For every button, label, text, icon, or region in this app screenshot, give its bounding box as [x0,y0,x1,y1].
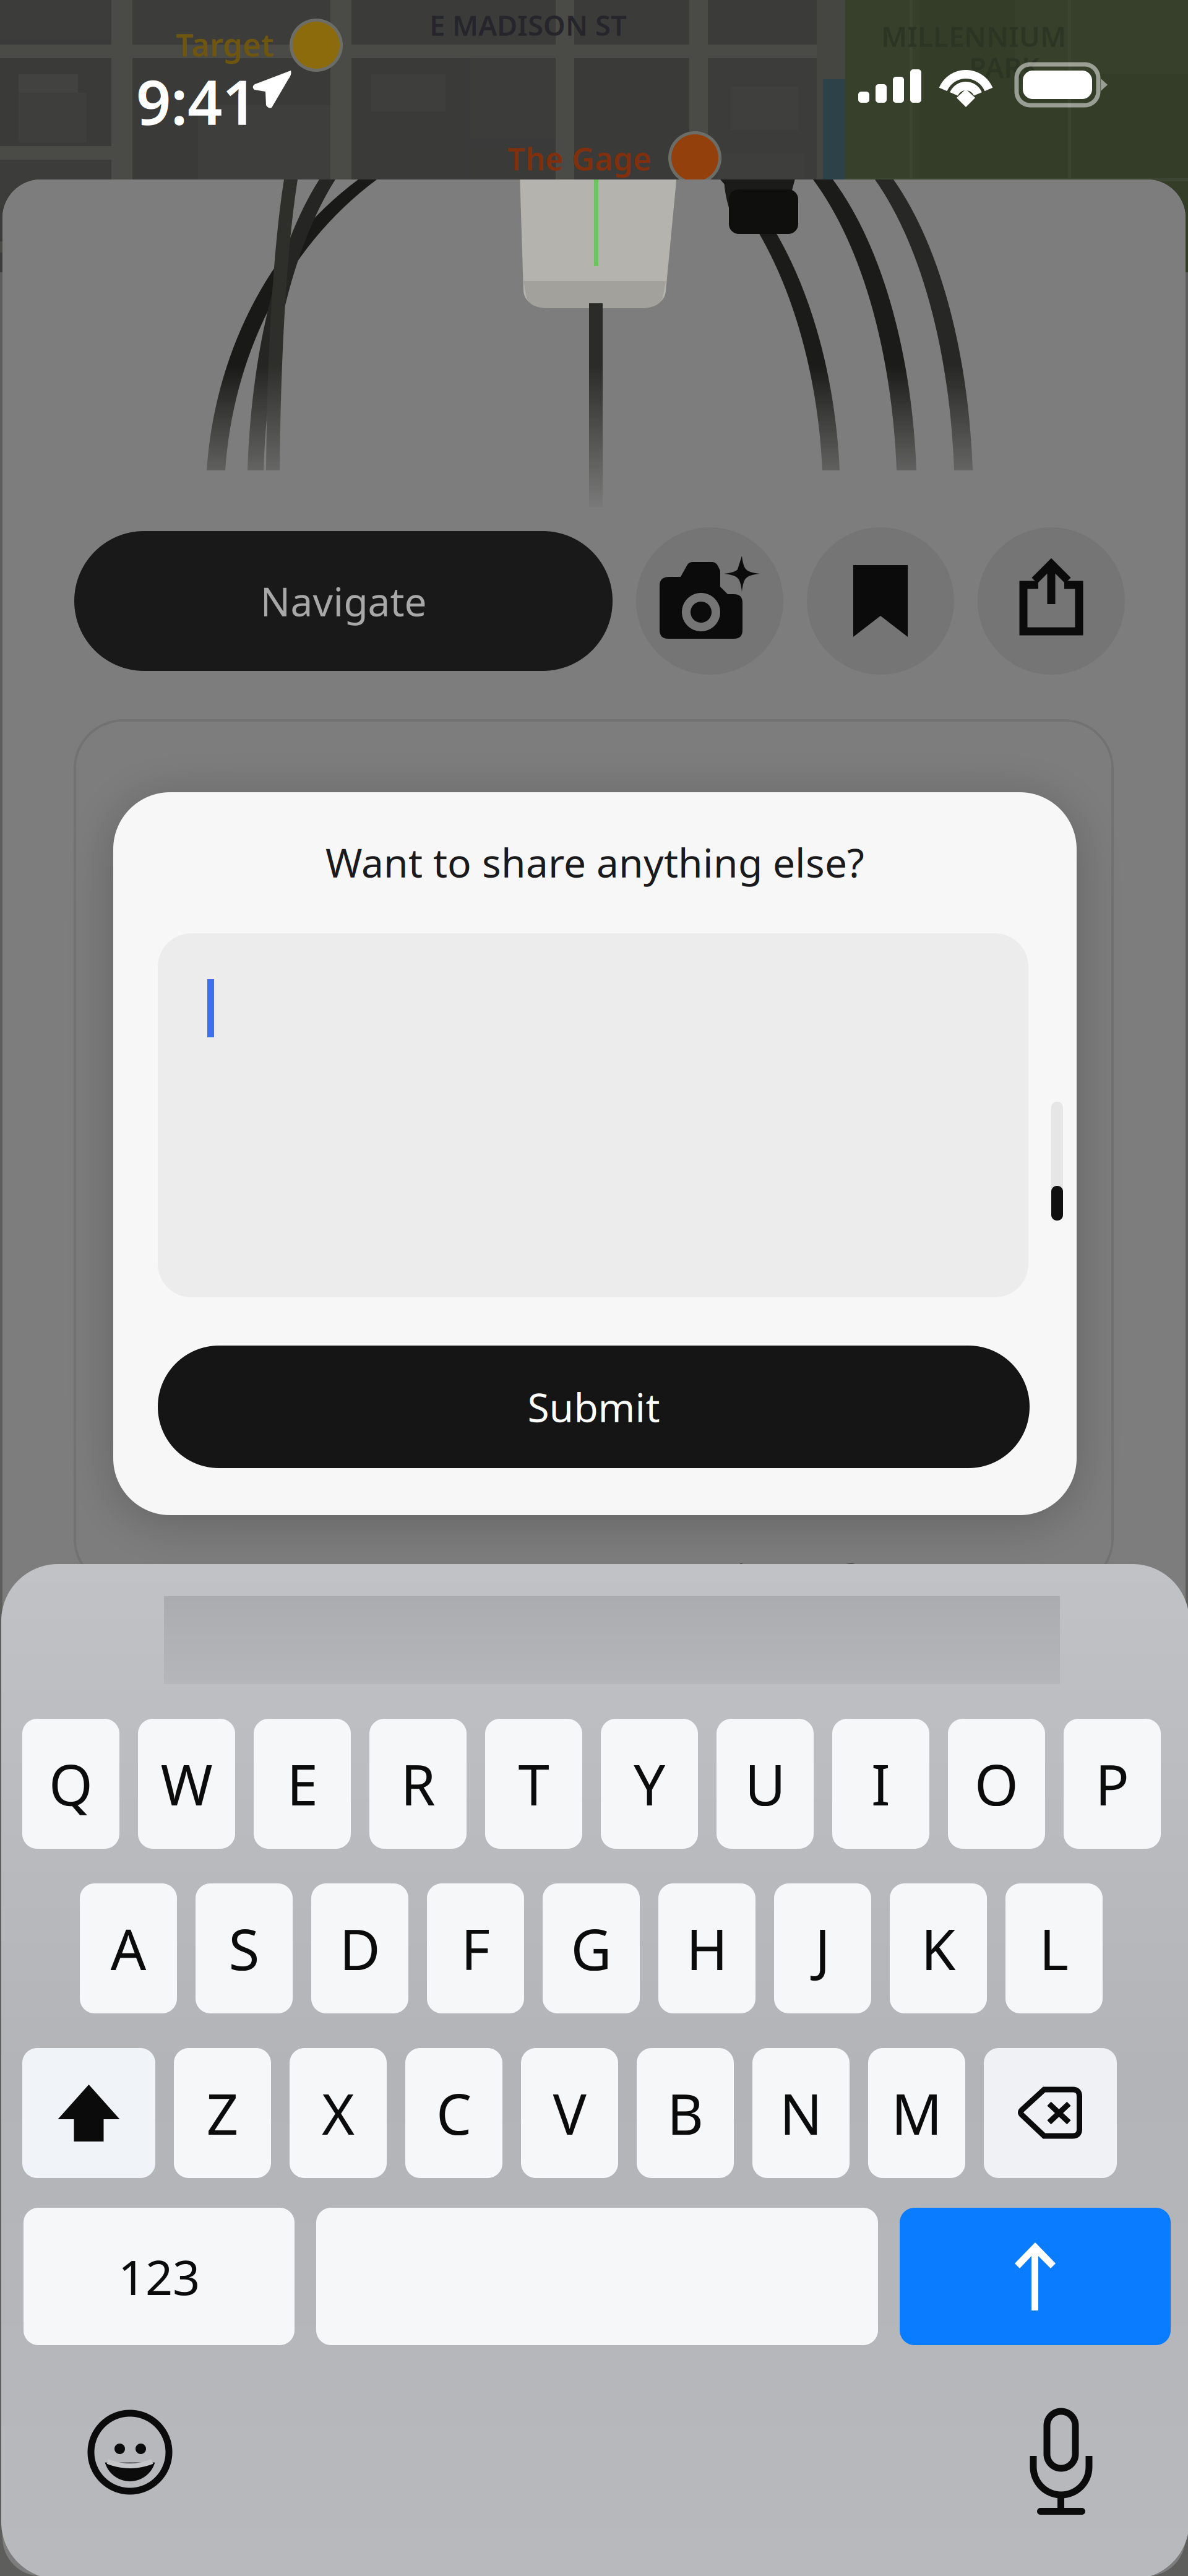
staticText: PARK [969,48,1039,86]
button[interactable]: Delete [984,2048,1117,2178]
button[interactable]: P [1064,1719,1161,1849]
button[interactable]: E [254,1719,351,1849]
button[interactable]: U [717,1719,814,1849]
button[interactable]: Add a photo [636,527,783,675]
button[interactable]: Send [900,2208,1171,2345]
button[interactable]: X [290,2048,387,2178]
staticText: C [436,2076,471,2150]
button[interactable]: D [311,1883,408,2013]
staticText: 123 [118,2245,200,2308]
button[interactable]: Y [601,1719,698,1849]
button[interactable]: I [832,1719,929,1849]
staticText: Submit [527,1381,660,1433]
button[interactable]: C [405,2048,502,2178]
staticText: E [287,1747,318,1821]
button[interactable] [316,2208,878,2345]
staticText: H [686,1911,728,1986]
staticText: I [871,1747,890,1821]
staticText: P [1095,1747,1129,1821]
button[interactable]: R [369,1719,467,1849]
button[interactable]: V [521,2048,618,2178]
staticText: R [401,1747,435,1821]
staticText: Y [634,1747,665,1821]
button[interactable]: N [752,2048,850,2178]
button[interactable]: Save [807,527,954,675]
staticText: M [891,2076,942,2150]
button[interactable]: S [196,1883,293,2013]
staticText: A [110,1911,146,1986]
button[interactable]: Q [22,1719,119,1849]
staticText: The Gage [507,137,652,179]
staticText: L [1039,1911,1069,1986]
button[interactable]: M [868,2048,965,2178]
button[interactable]: B [637,2048,734,2178]
staticText: O [975,1747,1018,1821]
button[interactable]: Shift [22,2048,155,2178]
button[interactable]: F [427,1883,524,2013]
button[interactable]: J [774,1883,871,2013]
staticText: B [667,2076,704,2150]
staticText: X [322,2076,355,2150]
button[interactable]: Dictate [1033,2391,1090,2496]
staticText: T [518,1747,549,1821]
staticText: S [229,1911,260,1986]
staticText: Navigate [260,575,427,627]
staticText: N [780,2076,822,2150]
button[interactable]: 123 [24,2208,295,2345]
button[interactable]: H [658,1883,755,2013]
staticText: U [745,1747,786,1821]
button[interactable]: K [890,1883,987,2013]
staticText: F [461,1911,490,1986]
button[interactable]: T [485,1719,582,1849]
staticText: How was your experience? [327,1550,861,1607]
staticText: Q [49,1747,93,1821]
button[interactable]: Z [174,2048,271,2178]
staticText: D [339,1911,380,1986]
staticText: W [161,1747,213,1821]
staticText: MILLENNIUM [881,17,1066,55]
button[interactable]: O [948,1719,1045,1849]
button[interactable]: A [80,1883,177,2013]
staticText: J [815,1911,830,1986]
button[interactable]: L [1005,1883,1103,2013]
staticText: V [553,2076,586,2150]
staticText: K [921,1911,956,1986]
button[interactable]: Emoji [90,2412,170,2492]
staticText: Z [206,2076,239,2150]
staticText: Target [176,24,274,65]
button[interactable]: W [138,1719,235,1849]
button[interactable]: Share [978,527,1125,675]
button[interactable]: G [543,1883,640,2013]
staticText: E MADISON ST [429,6,627,43]
button[interactable]: Navigate [74,531,613,671]
staticText: G [571,1911,612,1986]
staticText: 9:41 [136,61,257,142]
staticText: Want to share anything else? [325,836,864,888]
button[interactable]: Submit [158,1346,1030,1468]
